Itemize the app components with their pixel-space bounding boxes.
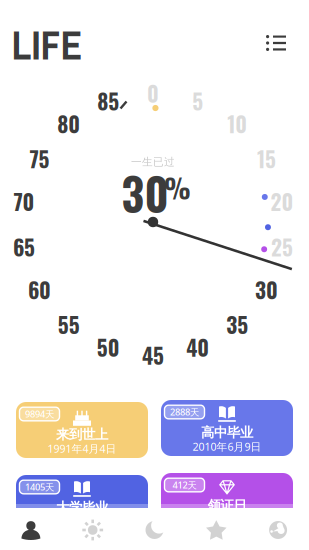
staticText: 65 — [13, 231, 35, 262]
staticText: 9894天 — [25, 408, 54, 420]
staticText: 大学毕业 — [56, 499, 108, 516]
staticText: % — [164, 168, 191, 207]
staticText: 35 — [226, 308, 248, 340]
staticText: 0 — [147, 77, 159, 109]
staticText: 来到世上 — [56, 426, 108, 443]
staticText: 高中毕业 — [201, 424, 253, 441]
staticText: 85 — [97, 85, 119, 117]
staticText: 412天 — [172, 479, 196, 491]
staticText: 1405天 — [25, 481, 54, 493]
staticText: 50 — [97, 331, 120, 363]
button[interactable]: 2888天 — [161, 400, 293, 456]
staticText: 2888天 — [170, 406, 199, 418]
staticText: 30 — [255, 274, 278, 305]
staticText: 领证日 — [207, 497, 246, 514]
staticText: 40 — [186, 331, 209, 363]
staticText: 2014年6月30日 — [44, 514, 119, 529]
staticText: 2017年2月14日 — [189, 512, 264, 527]
button[interactable]: 9894天 — [16, 402, 148, 458]
staticText: 一生已过 — [131, 155, 175, 168]
staticText: 2010年6月9日 — [192, 439, 261, 454]
staticText: 30 — [121, 160, 168, 225]
staticText: 45 — [142, 339, 164, 371]
button[interactable]: Profile — [11, 510, 51, 550]
staticText: 1991年4月4日 — [47, 441, 116, 456]
staticText: 60 — [28, 274, 51, 305]
staticText: 15 — [257, 143, 276, 174]
button[interactable]: 412天 — [161, 473, 293, 529]
staticText: 25 — [271, 231, 293, 262]
staticText: 20 — [270, 185, 293, 217]
button[interactable]: World — [258, 510, 298, 550]
button[interactable]: List — [254, 21, 298, 65]
button[interactable]: 1405天 — [16, 475, 148, 531]
button[interactable]: Favorites — [196, 510, 236, 550]
staticText: 55 — [58, 308, 80, 340]
staticText: 70 — [13, 185, 34, 217]
button[interactable]: Night — [134, 510, 174, 550]
staticText: 80 — [57, 108, 80, 139]
staticText: 75 — [30, 143, 50, 174]
staticText: 10 — [227, 108, 247, 139]
staticText: 5 — [192, 85, 203, 117]
button[interactable]: Day — [73, 510, 113, 550]
staticText: LIFE — [11, 18, 82, 72]
